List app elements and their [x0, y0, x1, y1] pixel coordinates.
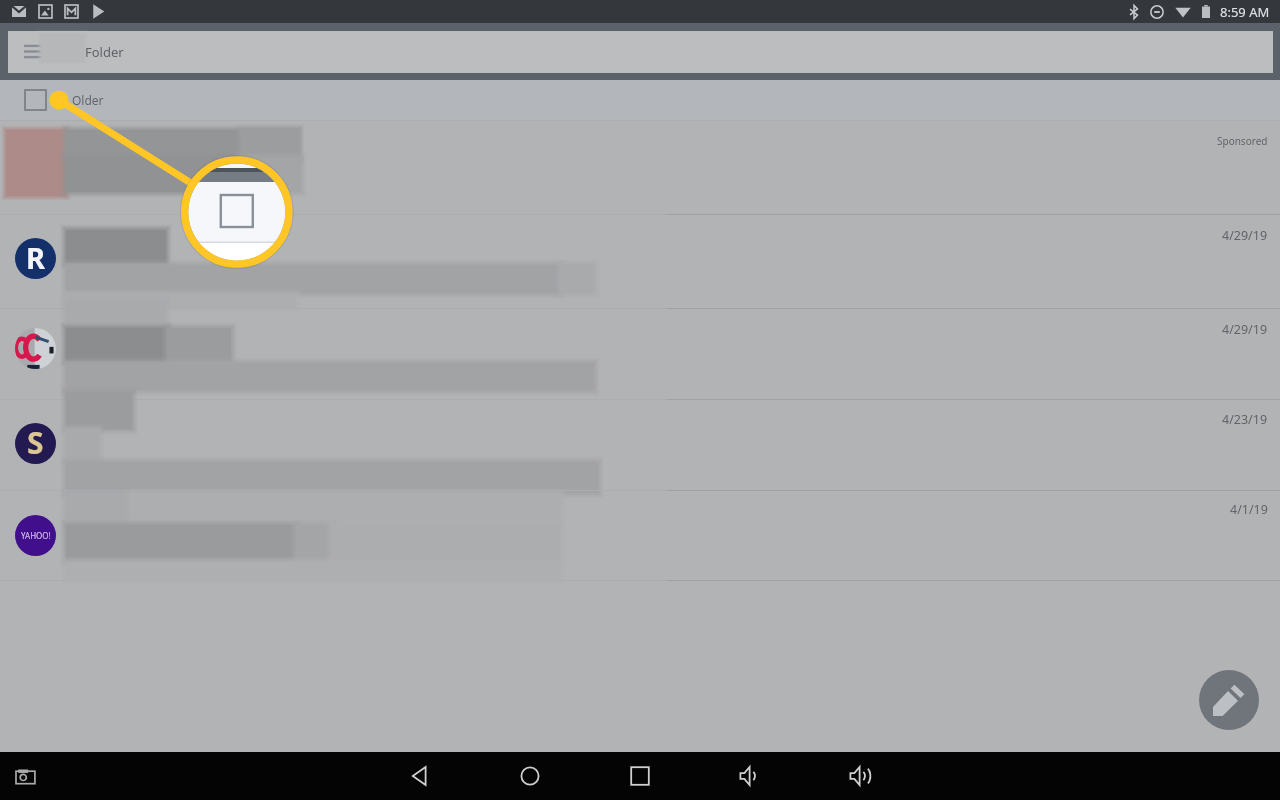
- staticText: Sponsored: [1217, 134, 1268, 148]
- button[interactable]: Screenshot: [14, 763, 40, 789]
- button[interactable]: Compose new message: [1199, 670, 1259, 730]
- staticText: 4/1/19: [1230, 501, 1268, 518]
- button[interactable]: Volume up: [843, 759, 877, 793]
- staticText: S: [27, 423, 44, 463]
- staticText: 4/23/19: [1222, 411, 1268, 428]
- staticText: 8:59 AM: [1220, 3, 1270, 21]
- button[interactable]: Volume down: [733, 759, 767, 793]
- button[interactable]: Select all older messages: [25, 90, 46, 110]
- button[interactable]: Sponsored: [0, 121, 1280, 215]
- button[interactable]: Back: [403, 759, 437, 793]
- button[interactable]: 4/29/19: [0, 309, 1280, 400]
- button[interactable]: Home: [513, 759, 547, 793]
- button[interactable]: Open navigation drawer: [8, 31, 1273, 73]
- button[interactable]: R: [0, 215, 1280, 309]
- staticText: Older: [72, 92, 104, 108]
- button[interactable]: S: [0, 400, 1280, 491]
- button[interactable]: Recent apps: [623, 759, 657, 793]
- staticText: 4/29/19: [1222, 321, 1268, 338]
- staticText: R: [26, 238, 46, 277]
- staticText: YAHOO!: [21, 530, 51, 541]
- staticText: 4/29/19: [1222, 227, 1268, 244]
- staticText: Folder: [85, 43, 124, 61]
- button[interactable]: YAHOO!: [0, 491, 1280, 581]
- button[interactable]: Open navigation drawer: [18, 35, 51, 68]
